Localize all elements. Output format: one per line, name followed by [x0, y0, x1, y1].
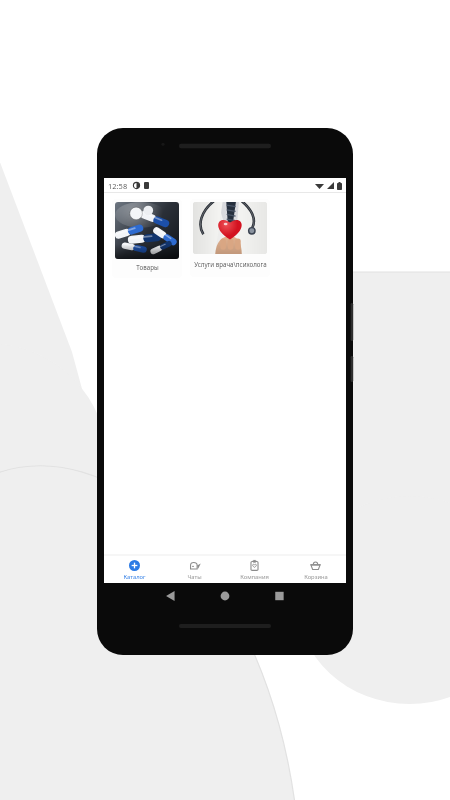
staticText: Чаты — [187, 573, 202, 581]
staticText: Каталог — [123, 573, 146, 581]
button[interactable]: Товары — [112, 199, 182, 278]
staticText: 12:58 — [108, 181, 128, 191]
button[interactable]: Компания — [224, 557, 285, 581]
staticText: Корзина — [304, 573, 328, 581]
staticText: Услуги врача\психолога — [194, 260, 267, 268]
staticText: Товары — [136, 263, 159, 271]
button[interactable]: Чаты — [164, 557, 224, 581]
button[interactable]: Услуги врача\психолога — [190, 199, 270, 277]
staticText: Компания — [240, 573, 269, 581]
button[interactable]: Корзина — [285, 557, 346, 581]
button[interactable]: Каталог — [104, 557, 164, 581]
